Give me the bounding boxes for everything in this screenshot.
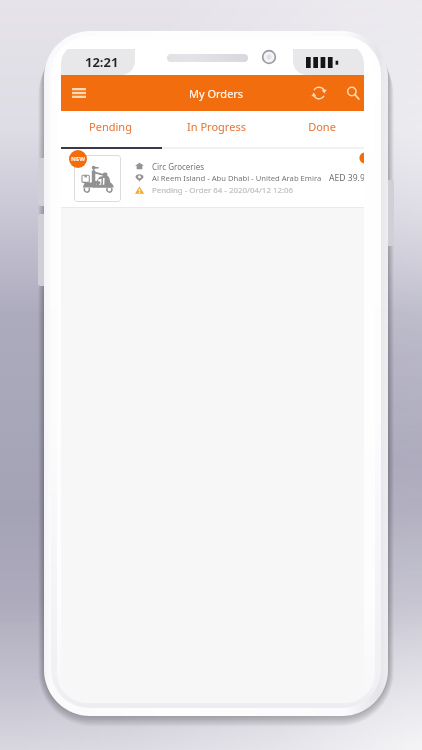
button[interactable]: Done [272,111,364,141]
staticText: Done [308,119,336,134]
button[interactable]: In Progress [166,111,266,141]
staticText: Pending [89,119,132,134]
button[interactable]: Search [337,75,364,111]
button[interactable]: NEW [61,149,364,207]
staticText: AED 39.9 [329,172,364,184]
staticText: NEW [71,155,86,163]
staticText: 12:21 [85,53,119,71]
staticText: My Orders [189,86,244,101]
staticText: In Progress [187,119,246,134]
button[interactable]: Open navigation menu [61,75,98,111]
staticText: Al Reem Island - Abu Dhabi - United Arab… [152,173,322,183]
staticText: Pending - Order 64 - 2020/04/12 12:06 [152,185,294,196]
button[interactable]: Pending [61,111,160,141]
staticText: Circ Groceries [152,161,205,172]
button[interactable]: Refresh orders [301,75,337,111]
